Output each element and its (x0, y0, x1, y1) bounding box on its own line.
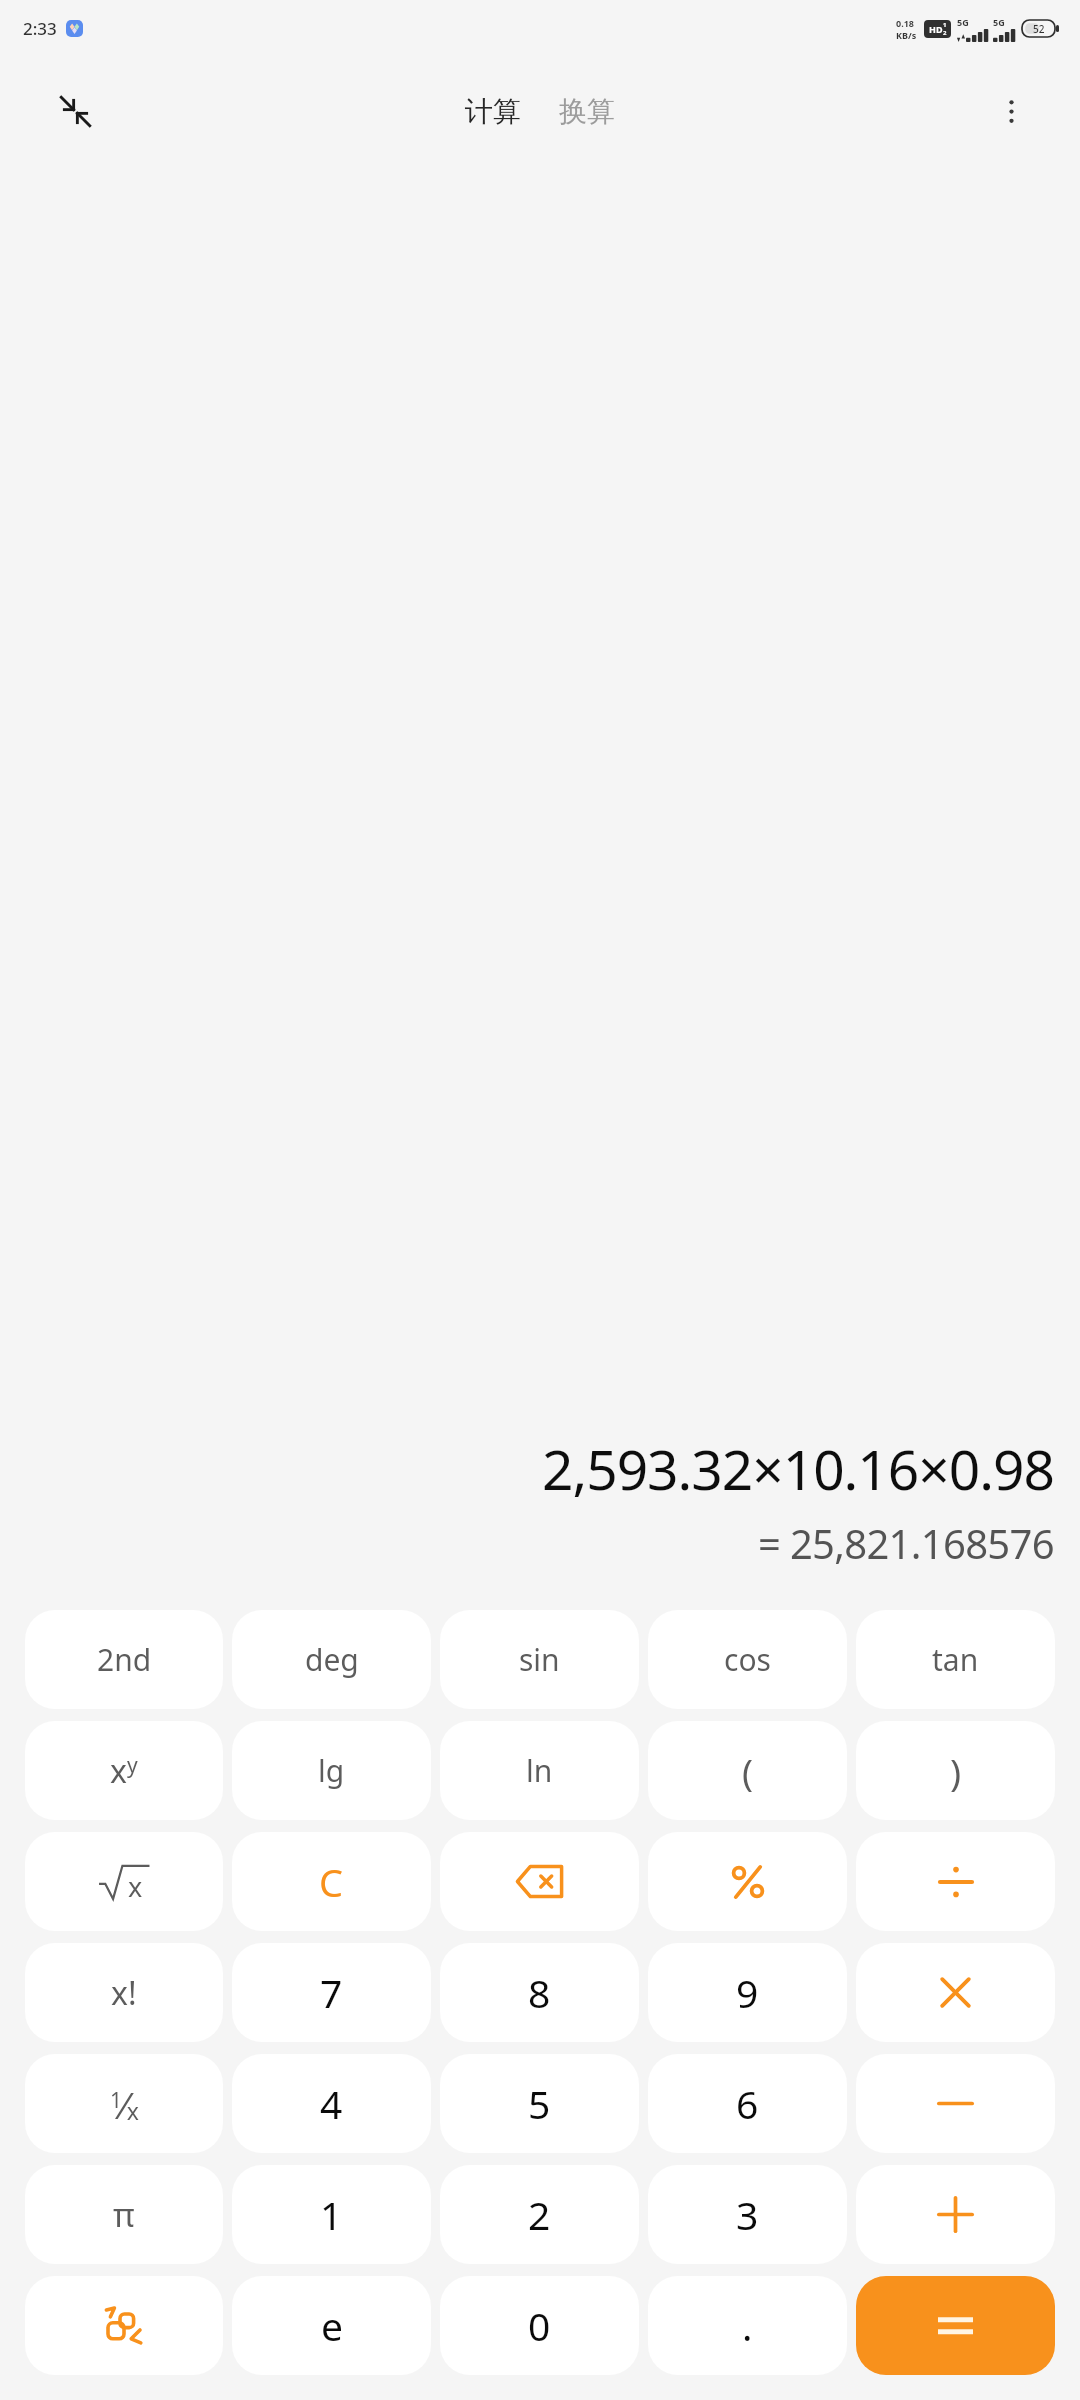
staticText: lg (318, 1750, 345, 1791)
staticText: 9 (736, 1966, 759, 2019)
button[interactable]: 6 (648, 2054, 847, 2153)
staticText: 5G (993, 16, 1005, 28)
button[interactable]: 0 (440, 2276, 639, 2375)
button[interactable]: 5 (440, 2054, 639, 2153)
button[interactable]: 9 (648, 1943, 847, 2042)
staticText: tan (932, 1639, 979, 1680)
button[interactable]: . (648, 2276, 847, 2375)
button[interactable]: More functions (25, 2276, 223, 2375)
staticText: HD (929, 23, 943, 35)
button[interactable]: More options (982, 82, 1040, 140)
staticText: ln (526, 1750, 553, 1791)
button[interactable]: 2nd (25, 1610, 223, 1709)
button[interactable]: Multiply (856, 1943, 1055, 2042)
button[interactable]: Minus (856, 2054, 1055, 2153)
staticText: 2:33 (23, 17, 57, 40)
staticText: 3 (736, 2188, 759, 2241)
staticText: 1⁄x (110, 2079, 139, 2129)
button[interactable]: 2 (440, 2165, 639, 2264)
button[interactable]: 8 (440, 1943, 639, 2042)
button[interactable]: cos (648, 1610, 847, 1709)
button[interactable]: 换算 (549, 84, 625, 139)
staticText: 5 (528, 2077, 551, 2130)
button[interactable]: xy (25, 1721, 223, 1820)
staticText: sin (519, 1639, 560, 1680)
staticText: 52 (1033, 22, 1045, 36)
staticText: C (319, 1856, 344, 1908)
staticText: π (113, 2192, 135, 2237)
button[interactable]: ( (648, 1721, 847, 1820)
button[interactable]: e (232, 2276, 431, 2375)
staticText: . (742, 2299, 753, 2352)
staticText: 4 (320, 2077, 343, 2130)
staticText: 2 (528, 2188, 551, 2241)
button[interactable]: ) (856, 1721, 1055, 1820)
staticText: 1 (320, 2188, 343, 2241)
button[interactable]: 1 (232, 2165, 431, 2264)
staticText: 2nd (97, 1639, 152, 1680)
button[interactable]: C (232, 1832, 431, 1931)
staticText: 1 (943, 21, 947, 29)
button[interactable]: lg (232, 1721, 431, 1820)
staticText: 5G (957, 16, 969, 28)
staticText: deg (305, 1639, 359, 1680)
button[interactable]: 计算 (455, 84, 531, 139)
button[interactable]: ln (440, 1721, 639, 1820)
button[interactable]: Percent (648, 1832, 847, 1931)
staticText: 换算 (559, 94, 615, 129)
button[interactable]: Divide (856, 1832, 1055, 1931)
button[interactable]: tan (856, 1610, 1055, 1709)
button[interactable]: Equals (856, 2276, 1055, 2375)
staticText: cos (724, 1639, 771, 1680)
button[interactable]: 1⁄x (25, 2054, 223, 2153)
button[interactable]: 7 (232, 1943, 431, 2042)
button[interactable]: x! (25, 1943, 223, 2042)
staticText: ( (742, 1746, 754, 1796)
staticText: = 25,821.168576 (758, 1516, 1054, 1570)
staticText: 0.18 (896, 17, 914, 29)
staticText: e (321, 2299, 343, 2352)
button[interactable]: x (25, 1832, 223, 1931)
staticText: 2 (943, 29, 947, 37)
button[interactable]: π (25, 2165, 223, 2264)
staticText: xy (110, 1749, 138, 1793)
button[interactable]: sin (440, 1610, 639, 1709)
staticText: 0 (528, 2299, 551, 2352)
staticText: x! (111, 1971, 137, 2015)
staticText: 7 (320, 1966, 343, 2019)
staticText: x (128, 1868, 143, 1905)
staticText: KB/s (896, 29, 917, 41)
staticText: 2,593.32×10.16×0.98 (542, 1431, 1054, 1506)
staticText: 6 (736, 2077, 759, 2130)
button[interactable]: deg (232, 1610, 431, 1709)
button[interactable]: 4 (232, 2054, 431, 2153)
button[interactable]: 3 (648, 2165, 847, 2264)
button[interactable]: Backspace (440, 1832, 639, 1931)
staticText: ) (950, 1746, 962, 1796)
button[interactable]: Collapse (46, 82, 104, 140)
staticText: 计算 (465, 94, 521, 129)
button[interactable]: Plus (856, 2165, 1055, 2264)
staticText: 8 (528, 1966, 551, 2019)
